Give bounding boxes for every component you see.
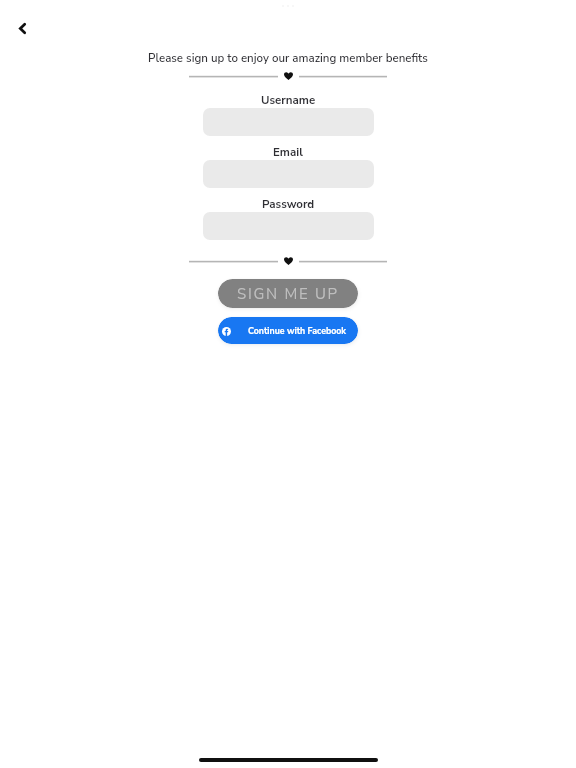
button[interactable]: Back [8, 14, 36, 42]
button[interactable]: SIGN ME UP [218, 279, 358, 308]
staticText: Please sign up to enjoy our amazing memb… [148, 50, 428, 66]
staticText: Email [273, 144, 303, 160]
staticText: Continue with Facebook [248, 325, 347, 337]
button[interactable]: Continue with Facebook [218, 317, 358, 344]
staticText: SIGN ME UP [237, 284, 339, 304]
staticText: Password [262, 196, 315, 212]
staticText: Username [261, 92, 316, 108]
